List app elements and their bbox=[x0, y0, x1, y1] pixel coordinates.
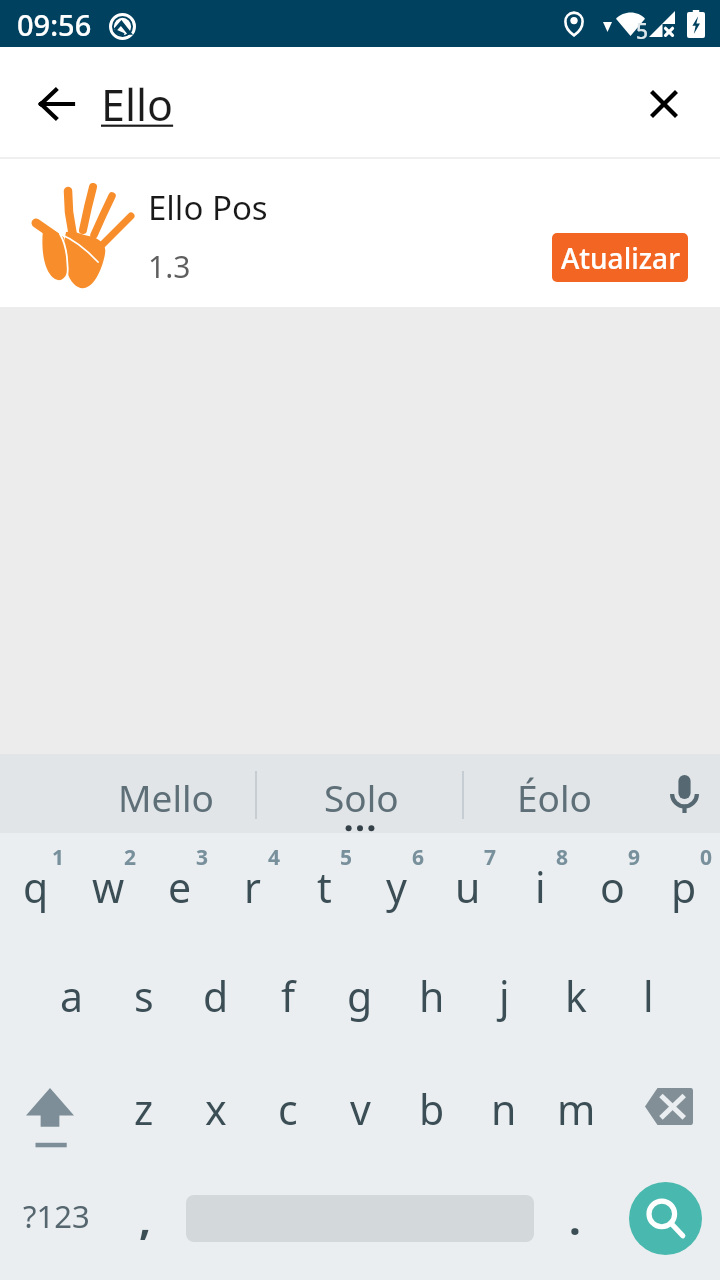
staticText: . bbox=[569, 1190, 581, 1247]
button[interactable]: m bbox=[540, 1056, 612, 1162]
button[interactable]: Éolo bbox=[464, 761, 644, 833]
button[interactable]: 1 bbox=[0, 834, 72, 940]
staticText: e bbox=[168, 859, 192, 915]
button[interactable]: 5 bbox=[288, 834, 360, 940]
staticText: w bbox=[92, 859, 125, 915]
button[interactable]: a bbox=[36, 943, 108, 1049]
button[interactable]: 4 bbox=[216, 834, 288, 940]
button[interactable]: f bbox=[252, 943, 324, 1049]
button[interactable]: Voice input bbox=[654, 756, 714, 832]
staticText: 1 bbox=[52, 843, 65, 872]
staticText: i bbox=[535, 859, 546, 915]
button[interactable]: Atualizar bbox=[552, 233, 688, 282]
staticText: h bbox=[419, 968, 445, 1024]
button[interactable]: g bbox=[324, 943, 396, 1049]
button[interactable]: x bbox=[180, 1056, 252, 1162]
staticText: , bbox=[139, 1190, 151, 1247]
staticText: 3 bbox=[196, 843, 209, 872]
staticText: y bbox=[386, 859, 407, 915]
staticText: 0 bbox=[700, 843, 713, 872]
button[interactable]: . bbox=[542, 1165, 608, 1271]
staticText: Mello bbox=[118, 772, 214, 822]
staticText: 09:56 bbox=[17, 5, 92, 44]
button[interactable]: b bbox=[396, 1056, 468, 1162]
button[interactable]: Search bbox=[611, 1165, 719, 1271]
staticText: u bbox=[455, 859, 481, 915]
button[interactable]: j bbox=[468, 943, 540, 1049]
button[interactable] bbox=[182, 1165, 538, 1271]
staticText: o bbox=[600, 859, 625, 915]
staticText: n bbox=[491, 1081, 517, 1137]
button[interactable]: 3 bbox=[144, 834, 216, 940]
staticText: a bbox=[60, 968, 84, 1024]
button[interactable]: Ello Pos bbox=[0, 159, 720, 307]
staticText: m bbox=[557, 1081, 596, 1137]
staticText: v bbox=[350, 1081, 371, 1137]
staticText: Ello Pos bbox=[148, 185, 268, 230]
staticText: f bbox=[281, 968, 296, 1024]
staticText: p bbox=[671, 859, 697, 915]
button[interactable]: l bbox=[612, 943, 684, 1049]
staticText: r bbox=[244, 859, 261, 915]
staticText: 2 bbox=[124, 843, 137, 872]
staticText: 6 bbox=[412, 843, 425, 872]
staticText: z bbox=[134, 1081, 154, 1137]
staticText: c bbox=[278, 1081, 298, 1137]
staticText: t bbox=[317, 859, 332, 915]
button[interactable]: d bbox=[180, 943, 252, 1049]
button[interactable]: c bbox=[252, 1056, 324, 1162]
button[interactable]: h bbox=[396, 943, 468, 1049]
staticText: k bbox=[565, 968, 587, 1024]
staticText: 8 bbox=[556, 843, 569, 872]
staticText: 9 bbox=[628, 843, 641, 872]
button[interactable]: Mello bbox=[76, 761, 256, 833]
button[interactable]: 0 bbox=[648, 834, 720, 940]
staticText: b bbox=[419, 1081, 445, 1137]
button[interactable]: 9 bbox=[576, 834, 648, 940]
button[interactable]: 8 bbox=[504, 834, 576, 940]
staticText: 7 bbox=[484, 843, 497, 872]
staticText: l bbox=[643, 968, 654, 1024]
button[interactable]: n bbox=[468, 1056, 540, 1162]
button[interactable]: Clear search bbox=[631, 71, 697, 137]
staticText: x bbox=[205, 1081, 227, 1137]
staticText: 5 bbox=[636, 17, 649, 46]
staticText: ?123 bbox=[23, 1195, 90, 1237]
staticText: Atualizar bbox=[561, 239, 680, 277]
staticText: s bbox=[134, 968, 154, 1024]
staticText: Solo bbox=[324, 772, 399, 822]
staticText: g bbox=[347, 968, 373, 1024]
button[interactable]: 6 bbox=[360, 834, 432, 940]
button[interactable]: k bbox=[540, 943, 612, 1049]
button[interactable]: , bbox=[110, 1165, 180, 1271]
button[interactable]: Backspace bbox=[619, 1053, 719, 1160]
button[interactable]: z bbox=[108, 1056, 180, 1162]
staticText: Éolo bbox=[517, 772, 592, 822]
button[interactable]: 7 bbox=[432, 834, 504, 940]
button[interactable]: 2 bbox=[72, 834, 144, 940]
staticText: q bbox=[23, 859, 49, 915]
button[interactable]: v bbox=[324, 1056, 396, 1162]
staticText: j bbox=[499, 968, 510, 1024]
staticText: 5 bbox=[340, 843, 353, 872]
button[interactable]: s bbox=[108, 943, 180, 1049]
staticText: 4 bbox=[268, 843, 281, 872]
button[interactable]: Shift bbox=[0, 1064, 100, 1171]
staticText: 1.3 bbox=[148, 246, 191, 287]
staticText: d bbox=[203, 968, 229, 1024]
button[interactable]: Solo bbox=[271, 761, 451, 833]
button[interactable]: Back bbox=[16, 71, 96, 137]
button[interactable]: ?123 bbox=[6, 1163, 106, 1269]
staticText: Ello bbox=[101, 75, 174, 134]
